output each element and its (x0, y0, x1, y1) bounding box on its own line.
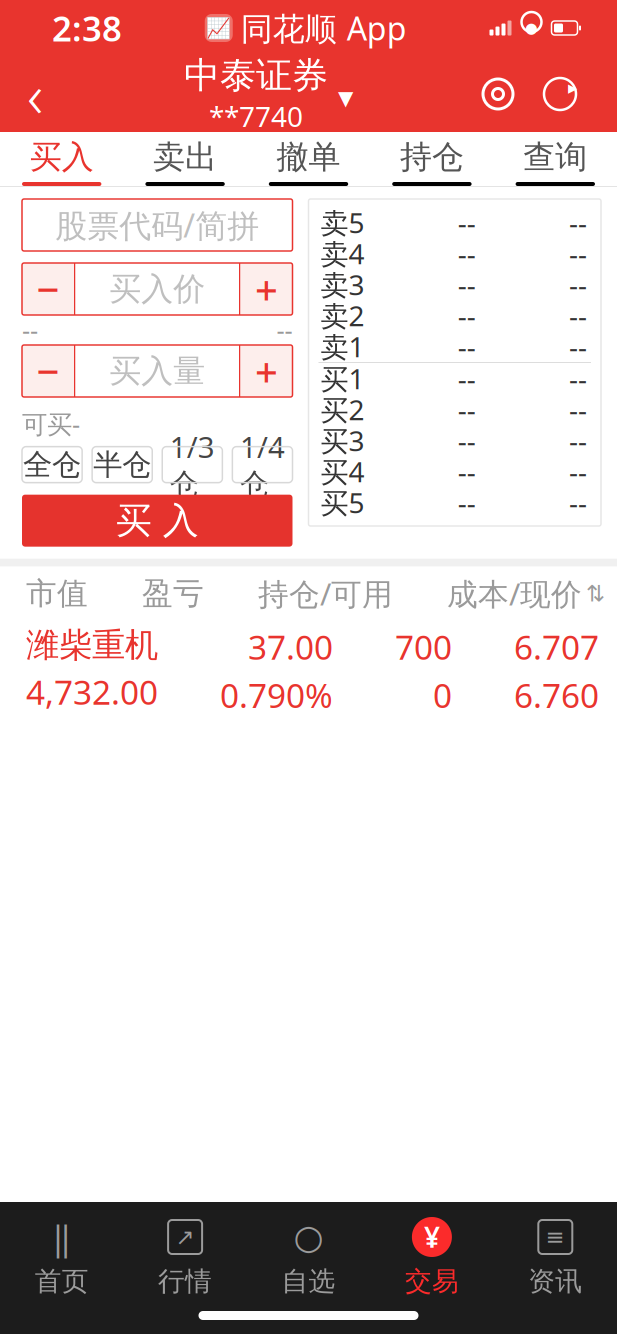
staticText: 买 入 (116, 498, 199, 543)
staticText: 查询 (523, 137, 587, 177)
staticText: ≡ (546, 1224, 565, 1250)
staticText: -- (458, 422, 476, 459)
staticText: -- (569, 266, 587, 303)
staticText: ¥ (424, 1218, 440, 1256)
staticText: 买入量 (109, 351, 205, 391)
staticText: ‹ (27, 53, 43, 135)
staticText: 卖3 (320, 266, 364, 303)
staticText: -- (458, 453, 476, 490)
staticText: 交易 (405, 1265, 459, 1298)
staticText: 📈 (206, 17, 231, 39)
staticText: 0.790% (220, 673, 333, 717)
staticText: 卖出 (153, 137, 217, 177)
staticText: 自选 (281, 1265, 335, 1298)
staticText: -- (569, 360, 587, 397)
staticText: -- (458, 204, 476, 241)
button[interactable]: 撤单 (247, 132, 370, 186)
staticText: 6.707 (514, 625, 599, 669)
staticText: 买3 (320, 422, 364, 459)
staticText: -- (569, 453, 587, 490)
staticText: ↗ (176, 1224, 195, 1250)
button[interactable]: 减少 (22, 345, 74, 397)
button[interactable]: 持仓 (370, 132, 494, 186)
staticText: 全仓 (23, 447, 81, 483)
button[interactable]: ¥ (370, 1216, 494, 1298)
staticText: -- (458, 235, 476, 272)
button[interactable]: ‖ (0, 1216, 123, 1298)
staticText: 持仓 (400, 137, 464, 177)
staticText: 买1 (320, 360, 364, 397)
button[interactable]: 中泰证券 (178, 53, 359, 135)
staticText: -- (458, 484, 476, 521)
button[interactable]: 增加 (240, 263, 292, 315)
staticText: 行情 (158, 1265, 212, 1298)
staticText: 市值 (26, 575, 88, 612)
staticText: ⇅ (586, 581, 605, 606)
staticText: -- (569, 235, 587, 272)
staticText: -- (569, 422, 587, 459)
button[interactable]: 半仓 (92, 447, 152, 483)
staticText: 买2 (320, 391, 364, 428)
staticText: 买入价 (109, 269, 205, 309)
button[interactable]: 刷新 (529, 59, 591, 129)
button[interactable]: 买 入 (22, 495, 292, 547)
staticText: 0 (433, 673, 452, 717)
staticText: 股票代码/简拼 (55, 204, 259, 246)
button[interactable]: 1/4仓 (232, 447, 292, 483)
staticText: 700 (395, 625, 452, 669)
staticText: + (255, 262, 278, 315)
staticText: 撤单 (276, 137, 340, 177)
staticText: − (36, 262, 59, 315)
button[interactable]: 潍柴重机 (0, 621, 617, 731)
staticText: ○ (293, 1217, 323, 1257)
staticText: -- (569, 484, 587, 521)
staticText: 可买- (22, 407, 80, 441)
staticText: -- (458, 297, 476, 334)
staticText: 中泰证券 (184, 53, 328, 97)
button[interactable]: 减少 (22, 263, 74, 315)
staticText: -- (458, 266, 476, 303)
staticText: + (255, 344, 278, 397)
staticText: -- (458, 360, 476, 397)
staticText: 1/3仓 (170, 427, 215, 502)
staticText: -- (458, 328, 476, 365)
staticText: 卖4 (320, 235, 364, 272)
button[interactable]: ○ (247, 1216, 370, 1298)
button[interactable]: ≡ (494, 1216, 617, 1298)
staticText: ▼ (338, 87, 353, 109)
button[interactable]: 设置 (467, 59, 529, 129)
staticText: 成本/现价 (447, 573, 582, 614)
staticText: 6.760 (514, 673, 599, 717)
staticText: − (36, 344, 59, 397)
staticText: 卖2 (320, 297, 364, 334)
button[interactable]: 增加 (240, 345, 292, 397)
staticText: 潍柴重机 (26, 625, 158, 665)
staticText: 买4 (320, 453, 364, 490)
staticText: -- (569, 328, 587, 365)
staticText: 盈亏 (142, 575, 204, 612)
staticText: 资讯 (528, 1265, 582, 1298)
staticText: ‖ (52, 1214, 71, 1260)
button[interactable]: 查询 (494, 132, 617, 186)
button[interactable]: 全仓 (22, 447, 82, 483)
staticText: 37.00 (248, 625, 333, 669)
staticText: 买5 (320, 484, 364, 521)
staticText: 首页 (35, 1265, 89, 1298)
staticText: 买入 (30, 137, 94, 177)
staticText: -- (569, 204, 587, 241)
staticText: -- (276, 313, 292, 347)
staticText: -- (569, 297, 587, 334)
staticText: 2:38 (52, 5, 122, 51)
staticText: **7740 (209, 97, 303, 135)
staticText: 1/4仓 (240, 427, 285, 502)
button[interactable]: 买入 (0, 132, 123, 186)
staticText: 同花顺 App (241, 7, 407, 49)
button[interactable]: 返回 (0, 59, 70, 129)
staticText: -- (458, 391, 476, 428)
staticText: ▸ (568, 77, 577, 98)
staticText: 4,732.00 (26, 670, 158, 714)
staticText: -- (22, 313, 38, 347)
button[interactable]: 卖出 (123, 132, 247, 186)
button[interactable]: 1/3仓 (162, 447, 222, 483)
button[interactable]: ↗ (123, 1216, 247, 1298)
